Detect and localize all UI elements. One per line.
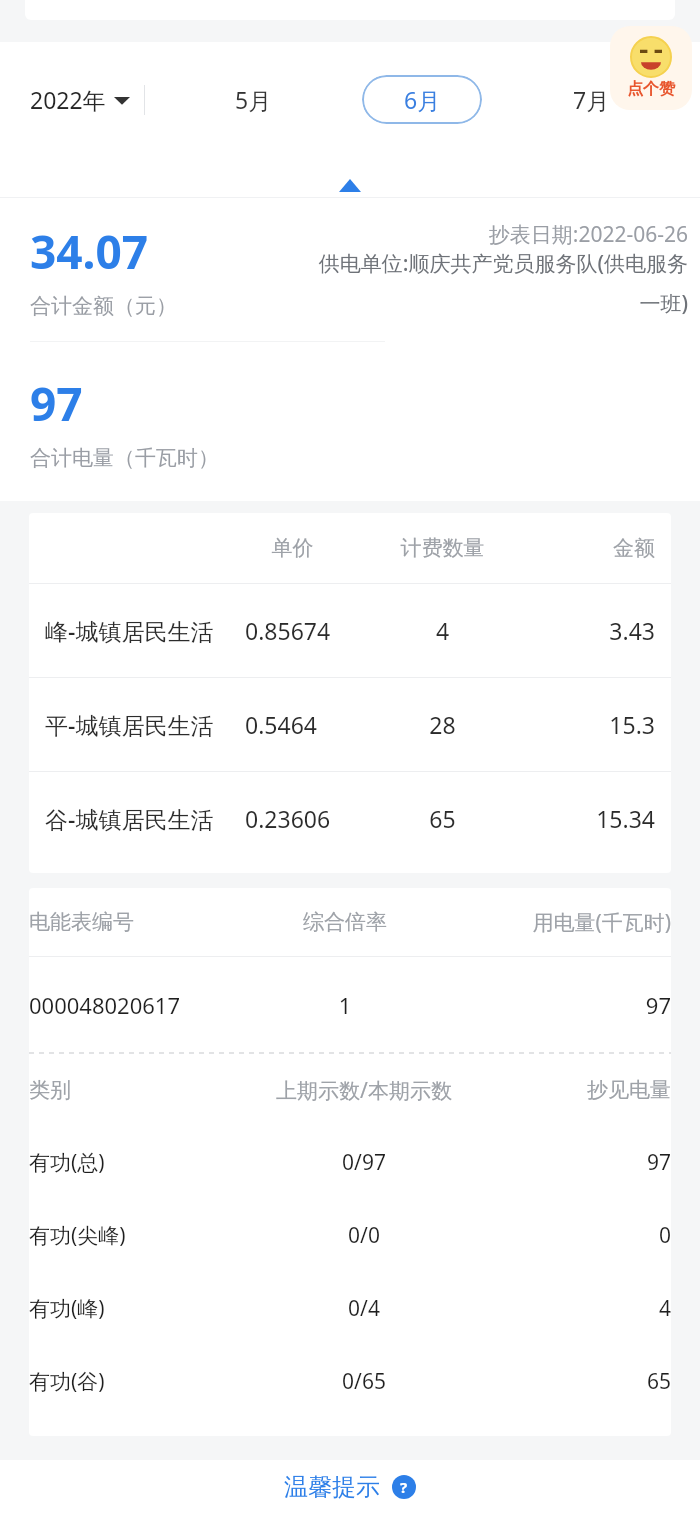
button[interactable]: 有功(总) — [29, 1126, 671, 1199]
staticText: 有功(尖峰) — [29, 1221, 243, 1250]
button[interactable]: 谷-城镇居民生活 — [29, 772, 671, 865]
staticText: 0/65 — [243, 1367, 485, 1396]
button[interactable]: 峰-城镇居民生活 — [29, 584, 671, 677]
staticText: 单价 — [245, 535, 340, 561]
staticText: 有功(峰) — [29, 1294, 243, 1323]
button[interactable]: 点个赞 — [610, 26, 692, 110]
staticText: ? — [400, 1477, 408, 1497]
button[interactable]: 有功(尖峰) — [29, 1199, 671, 1272]
staticText: 有功(总) — [29, 1148, 243, 1177]
staticText: 97 — [485, 1148, 671, 1177]
staticText: 上期示数/本期示数 — [243, 1076, 485, 1105]
staticText: 65 — [340, 803, 545, 834]
staticText: 000048020617 — [29, 990, 233, 1020]
staticText: 0 — [485, 1221, 671, 1250]
staticText: 供电单位:顺庆共产党员服务队(供电服务一班) — [310, 249, 688, 317]
button[interactable]: 2022年 — [0, 76, 142, 123]
staticText: 计费数量 — [340, 535, 545, 561]
staticText: 0/0 — [243, 1221, 485, 1250]
staticText: 电能表编号 — [29, 909, 249, 935]
button[interactable]: 6月 — [362, 75, 482, 124]
staticText: 4 — [340, 615, 545, 646]
staticText: 0.23606 — [245, 803, 340, 834]
staticText: 平-城镇居民生活 — [45, 709, 245, 740]
staticText: 5月 — [235, 84, 272, 115]
staticText: 1 — [249, 990, 441, 1020]
staticText: 0/97 — [243, 1148, 485, 1177]
staticText: 有功(谷) — [29, 1367, 243, 1396]
staticText: 97 — [441, 990, 671, 1020]
button[interactable]: 7月 — [482, 84, 700, 115]
button[interactable]: 平-城镇居民生活 — [29, 678, 671, 771]
staticText: 0.5464 — [245, 709, 340, 740]
staticText: 合计金额（元） — [30, 293, 177, 319]
staticText: 金额 — [545, 535, 655, 561]
staticText: 4 — [485, 1294, 671, 1323]
staticText: 65 — [485, 1367, 671, 1396]
staticText: 7月 — [573, 84, 610, 115]
staticText: 峰-城镇居民生活 — [45, 615, 245, 646]
staticText: 6月 — [404, 84, 441, 115]
staticText: 类别 — [29, 1077, 243, 1103]
staticText: 用电量(千瓦时) — [441, 908, 671, 937]
staticText: 0.85674 — [245, 615, 340, 646]
staticText: 合计电量（千瓦时） — [30, 445, 219, 471]
staticText: 34.07 — [30, 220, 149, 283]
button[interactable]: 温馨提示 — [264, 1462, 436, 1512]
button[interactable]: 有功(谷) — [29, 1345, 671, 1418]
staticText: 3.43 — [545, 615, 655, 646]
staticText: 抄表日期:2022-06-26 — [310, 220, 688, 249]
staticText: 点个赞 — [627, 79, 675, 99]
staticText: 28 — [340, 709, 545, 740]
staticText: 97 — [30, 372, 83, 435]
staticText: 15.3 — [545, 709, 655, 740]
button[interactable]: 5月 — [145, 84, 362, 115]
staticText: 综合倍率 — [249, 909, 441, 935]
staticText: 谷-城镇居民生活 — [45, 803, 245, 834]
staticText: 温馨提示 — [284, 1472, 380, 1502]
button[interactable]: 有功(峰) — [29, 1272, 671, 1345]
staticText: 抄见电量 — [485, 1077, 671, 1103]
staticText: 2022年 — [30, 84, 106, 115]
staticText: 0/4 — [243, 1294, 485, 1323]
staticText: 15.34 — [545, 803, 655, 834]
